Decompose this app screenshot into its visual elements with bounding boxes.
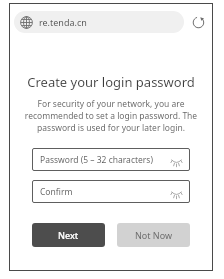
staticText: Confirm (40, 186, 168, 198)
button[interactable]: Not Now (117, 223, 190, 247)
button[interactable]: Reload (188, 12, 208, 32)
staticText: Not Now (135, 229, 173, 241)
staticText: re.tenda.cn (39, 16, 87, 28)
staticText: Next (58, 229, 79, 241)
button[interactable]: re.tenda.cn (14, 11, 184, 33)
button[interactable]: Confirm (32, 180, 190, 203)
button[interactable]: Password (5 – 32 characters) (32, 148, 190, 171)
button[interactable]: Show password (168, 184, 184, 200)
staticText: For security of your network, you are re… (23, 98, 199, 134)
button[interactable]: Next (32, 223, 105, 247)
staticText: Create your login password (9, 73, 213, 91)
staticText: Password (5 – 32 characters) (40, 154, 168, 166)
button[interactable]: Show password (168, 152, 184, 168)
